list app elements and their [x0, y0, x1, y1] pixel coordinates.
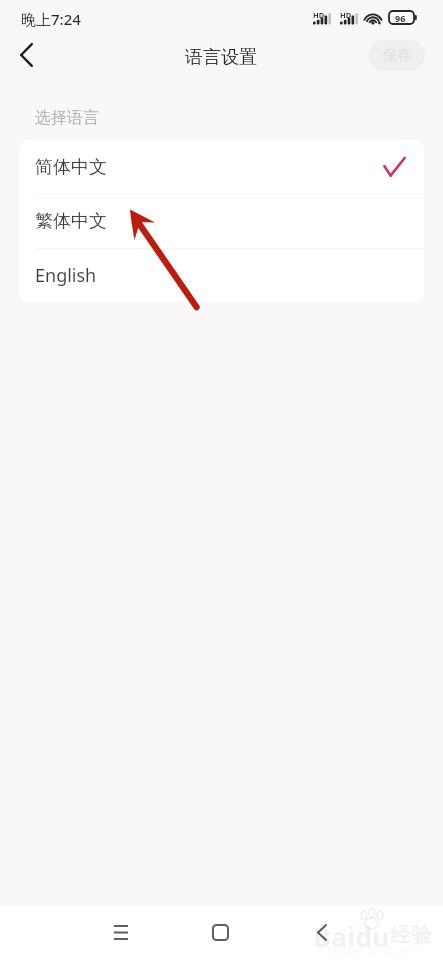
- staticText: 简体中文: [35, 156, 107, 179]
- staticText: HD: [340, 10, 352, 20]
- button[interactable]: Back: [6, 35, 46, 75]
- button[interactable]: Recent apps: [96, 908, 145, 957]
- button[interactable]: 繁体中文: [19, 195, 424, 248]
- button[interactable]: Home: [196, 908, 245, 957]
- button[interactable]: English: [19, 249, 424, 302]
- staticText: HD: [313, 10, 325, 20]
- button[interactable]: 保存: [368, 40, 425, 71]
- staticText: 保存: [383, 47, 411, 65]
- button[interactable]: Back: [297, 908, 346, 957]
- staticText: Baidu: [313, 918, 390, 955]
- staticText: English: [35, 263, 97, 288]
- staticText: 96: [395, 12, 406, 24]
- button[interactable]: 简体中文: [19, 140, 424, 194]
- staticText: 繁体中文: [35, 210, 107, 233]
- staticText: 语言设置: [185, 46, 257, 69]
- staticText: jingyan.baidu.com: [327, 942, 423, 957]
- staticText: 选择语言: [35, 108, 99, 128]
- staticText: 晚上7:24: [21, 9, 81, 29]
- staticText: 经验: [390, 922, 432, 948]
